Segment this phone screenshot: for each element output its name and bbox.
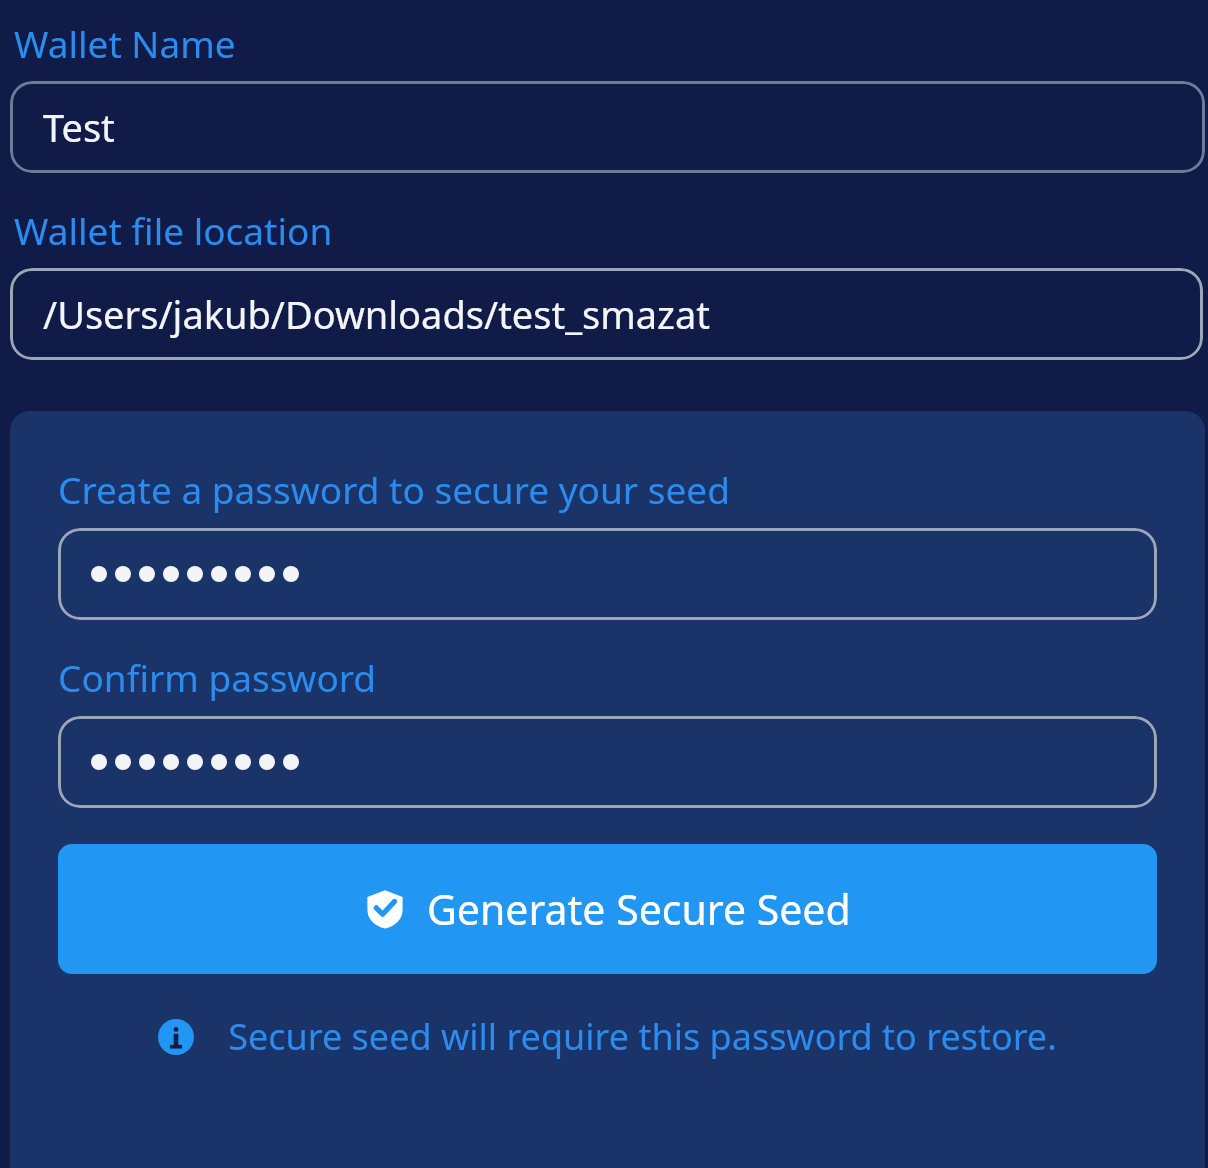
button[interactable] [58,528,1157,620]
staticText: Create a password to secure your seed [58,464,730,514]
button[interactable] [58,716,1157,808]
staticText: Secure seed will require this password t… [228,1012,1057,1061]
button[interactable]: Generate Secure Seed [58,844,1157,974]
staticText: Generate Secure Seed [427,881,851,937]
staticText: Wallet Name [14,18,236,68]
staticText: Test [43,101,115,153]
button[interactable]: /Users/jakub/Downloads/test_smazat [10,268,1203,360]
staticText: Wallet file location [14,205,333,255]
staticText: /Users/jakub/Downloads/test_smazat [43,288,711,340]
button[interactable]: Test [10,81,1205,173]
staticText: Confirm password [58,652,377,702]
other: Information [158,1019,194,1055]
